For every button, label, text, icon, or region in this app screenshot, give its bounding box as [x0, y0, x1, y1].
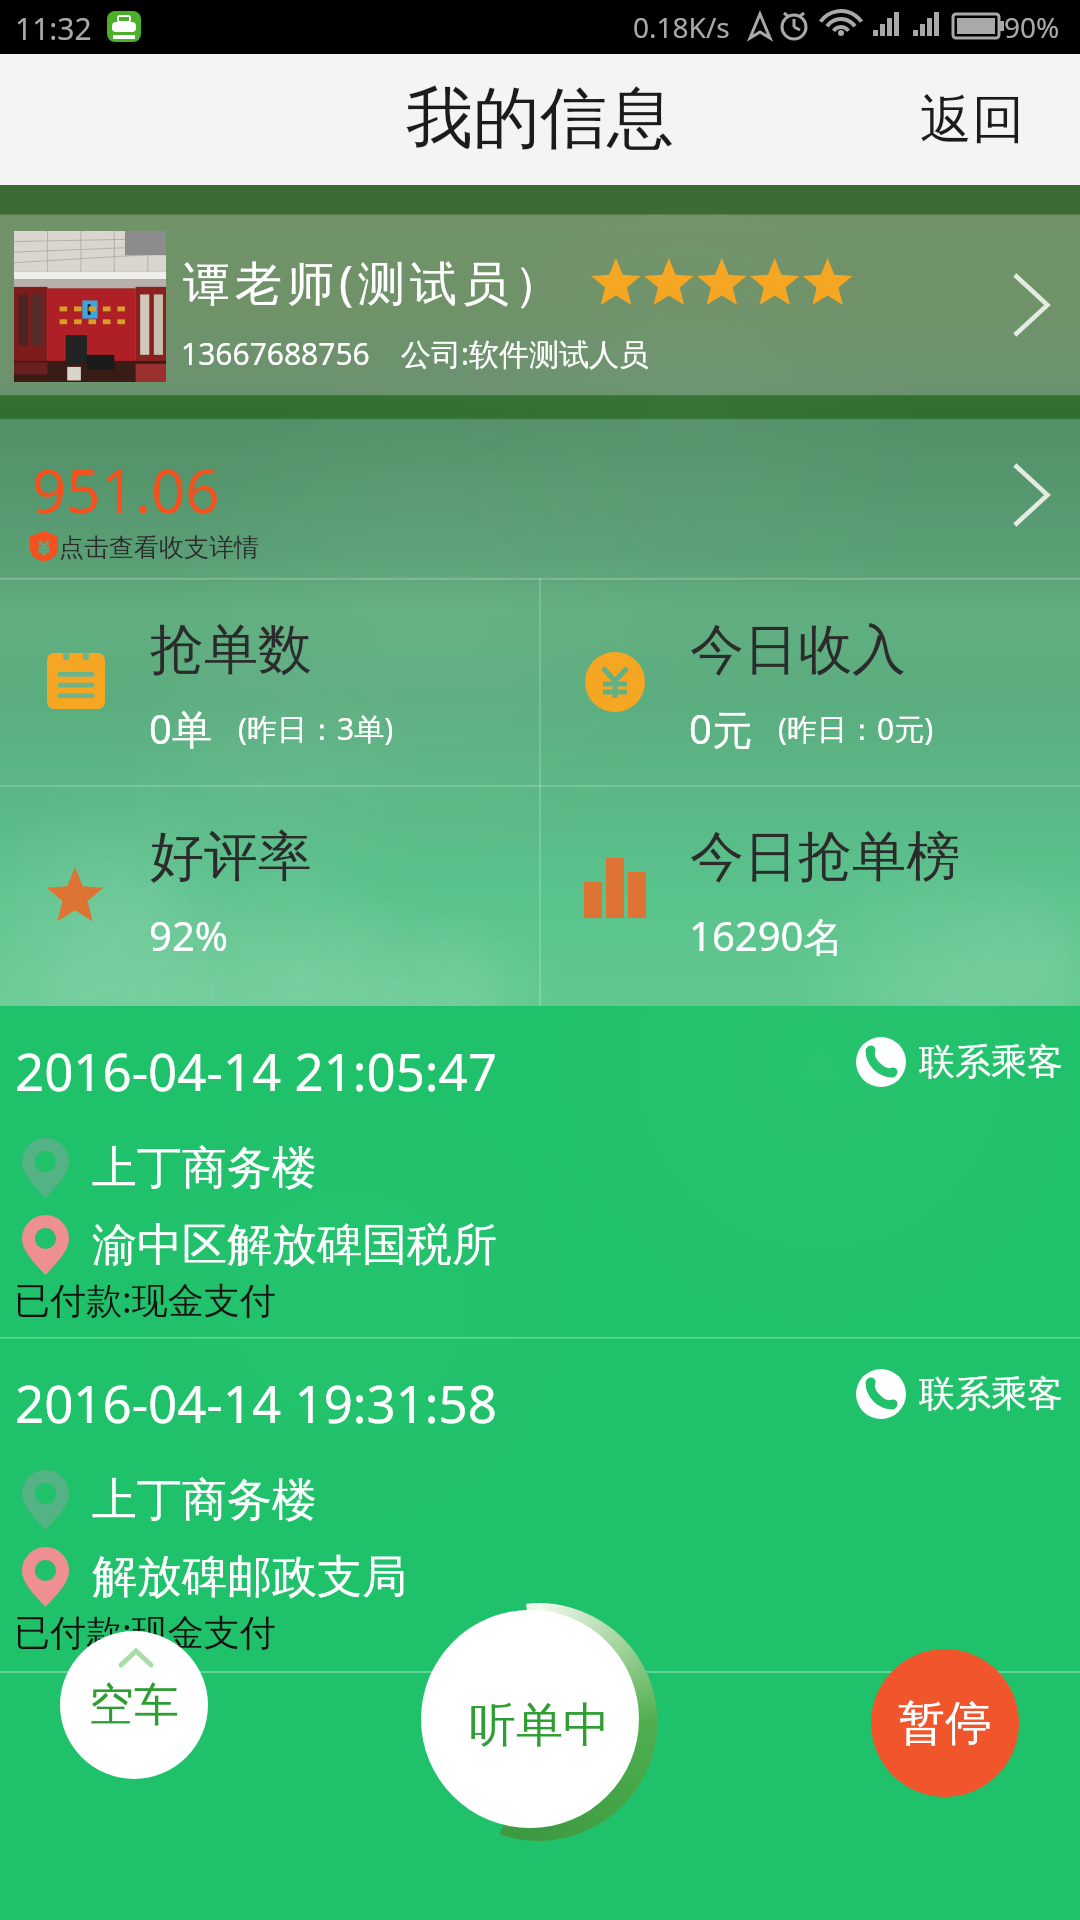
staticText: 已付款:现金支付 [14, 1275, 276, 1324]
staticText: 听单中 [469, 1696, 610, 1755]
staticText: 0元 [689, 701, 752, 756]
button[interactable]: 听单中 [421, 1610, 639, 1828]
button[interactable]: 2016-04-14 19:31:58 [0, 1338, 1080, 1670]
staticText: 2016-04-14 21:05:47 [15, 1036, 497, 1105]
button[interactable]: 今日收入 [540, 578, 1080, 785]
staticText: 上丁商务楼 [92, 1140, 317, 1197]
staticText: 渝中区解放碑国税所 [92, 1217, 497, 1274]
staticText: 上丁商务楼 [92, 1472, 317, 1529]
staticText: 暂停 [898, 1694, 992, 1753]
button[interactable]: 今日抢单榜 [540, 785, 1080, 1006]
staticText: 今日抢单榜 [690, 823, 960, 891]
button[interactable]: 联系乘客 [845, 1024, 1075, 1114]
staticText: 2016-04-14 19:31:58 [15, 1368, 497, 1437]
staticText: 今日收入 [690, 616, 906, 684]
staticText: 点击查看收支详情 [59, 532, 259, 563]
button[interactable]: 点击查看收支详情 [0, 419, 1080, 578]
staticText: 951.06 [32, 449, 220, 531]
staticText: 92% [149, 908, 228, 962]
staticText: 联系乘客 [919, 1371, 1063, 1416]
staticText: 空车 [89, 1677, 179, 1734]
staticText: 11:32 [15, 8, 92, 49]
staticText: 0单 [149, 701, 212, 756]
button[interactable]: 返回 [890, 54, 1053, 185]
button[interactable]: 暂停 [871, 1649, 1019, 1797]
staticText: 90% [1004, 8, 1060, 46]
staticText: 0.18K/s [633, 8, 730, 46]
button[interactable]: 抢单数 [0, 578, 540, 785]
staticText: 16290名 [689, 908, 844, 963]
button[interactable]: 个人信息 [0, 214, 1080, 395]
staticText: 已付款:现金支付 [14, 1607, 276, 1656]
staticText: (昨日：0元) [778, 708, 934, 749]
button[interactable]: 好评率 [0, 785, 540, 1006]
staticText: 联系乘客 [919, 1039, 1063, 1084]
staticText: 解放碑邮政支局 [92, 1549, 407, 1606]
staticText: 13667688756 公司:软件测试人员 [181, 333, 649, 374]
staticText: 好评率 [150, 823, 312, 891]
button[interactable]: 2016-04-14 21:05:47 [0, 1006, 1080, 1338]
staticText: (昨日：3单) [238, 708, 394, 749]
staticText: 返回 [920, 87, 1024, 153]
button[interactable]: 联系乘客 [845, 1356, 1075, 1446]
staticText: 谭老师(测试员） [183, 250, 567, 314]
staticText: 我的信息 [406, 76, 674, 160]
staticText: 抢单数 [150, 616, 312, 684]
button[interactable]: 空车 [60, 1631, 208, 1779]
